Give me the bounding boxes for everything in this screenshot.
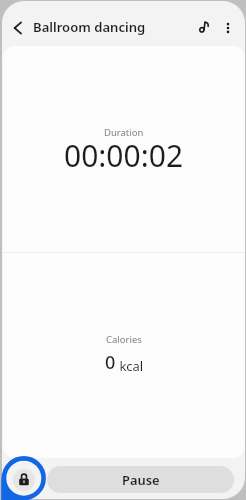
button[interactable]: More options [214,14,241,41]
button[interactable]: Lock [13,469,35,491]
button[interactable]: Pause [47,466,234,493]
staticText: Ballroom dancing [33,18,146,36]
button[interactable]: Music [190,13,217,40]
staticText: Calories [106,333,142,346]
staticText: 0 [105,350,116,375]
staticText: Pause [122,471,160,489]
staticText: Duration [104,126,144,139]
button[interactable]: Back [5,15,31,41]
staticText: 00:00:02 [64,135,184,176]
staticText: kcal [116,357,144,375]
